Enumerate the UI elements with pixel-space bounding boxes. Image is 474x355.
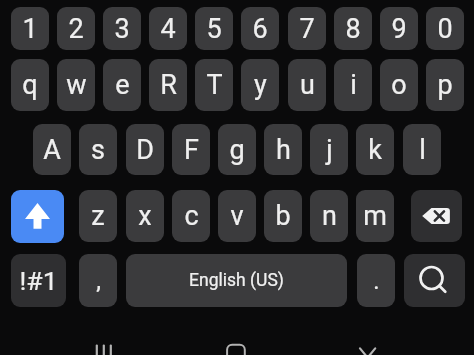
button[interactable]: 3 [103,7,141,50]
button[interactable]: n [310,190,348,242]
button[interactable] [11,190,64,243]
button[interactable]: D [126,124,164,175]
button[interactable]: s [79,124,117,175]
staticText: T [206,69,223,101]
button[interactable]: z [79,190,117,242]
staticText: 2 [68,13,84,45]
staticText: v [230,200,244,232]
staticText: c [184,200,199,232]
button[interactable]: o [380,59,418,111]
button[interactable]: m [356,190,394,242]
button[interactable]: i [334,59,372,111]
staticText: w [66,69,87,101]
button[interactable]: u [288,59,326,111]
staticText: q [22,69,38,101]
staticText: i [350,69,357,101]
staticText: e [115,69,130,101]
staticText: . [373,267,380,295]
button[interactable]: p [426,59,464,111]
button[interactable]: 8 [334,7,372,50]
staticText: 1 [22,13,38,45]
staticText: 4 [160,13,176,45]
button[interactable]: , [79,254,117,307]
staticText: o [391,69,407,101]
staticText: 5 [206,13,222,45]
staticText: z [91,200,105,232]
staticText: R [160,69,177,101]
button[interactable] [218,335,254,355]
staticText: s [91,134,105,166]
button[interactable]: F [172,124,210,175]
button[interactable]: 2 [57,7,95,50]
button[interactable]: 1 [11,7,49,50]
button[interactable]: b [264,190,302,242]
staticText: 9 [391,13,407,45]
button[interactable]: w [57,59,95,111]
staticText: g [229,134,245,166]
staticText: D [136,134,154,166]
staticText: 0 [437,13,453,45]
button[interactable]: 9 [380,7,418,50]
staticText: m [363,200,387,232]
staticText: F [184,134,199,166]
button[interactable]: R [149,59,187,111]
button[interactable]: 5 [195,7,233,50]
staticText: h [276,134,291,166]
staticText: x [138,200,152,232]
button[interactable]: 7 [288,7,326,50]
staticText: b [275,200,291,232]
button[interactable]: 4 [149,7,187,50]
button[interactable]: j [310,124,348,175]
button[interactable]: A [33,124,71,175]
button[interactable] [411,190,462,242]
staticText: l [419,134,426,166]
staticText: 7 [299,13,315,45]
button[interactable]: v [218,190,256,242]
staticText: u [300,69,315,101]
button[interactable]: !#1 [11,254,66,307]
button[interactable]: e [103,59,141,111]
staticText: k [368,134,382,166]
staticText: 3 [114,13,130,45]
button[interactable]: l [403,124,441,175]
button[interactable]: 6 [241,7,279,50]
button[interactable]: 0 [426,7,464,50]
button[interactable]: g [218,124,256,175]
staticText: y [254,69,267,101]
button[interactable]: English (US) [126,254,347,307]
button[interactable]: x [126,190,164,242]
staticText: j [326,134,333,166]
staticText: p [437,69,453,101]
staticText: A [43,134,61,166]
button[interactable] [86,335,122,355]
staticText: !#1 [19,265,58,296]
button[interactable]: h [264,124,302,175]
button[interactable]: q [11,59,49,111]
staticText: n [322,200,337,232]
staticText: 8 [345,13,361,45]
button[interactable]: T [195,59,233,111]
staticText: 6 [252,13,268,45]
button[interactable]: . [357,254,395,307]
button[interactable]: c [172,190,210,242]
button[interactable] [350,335,386,355]
button[interactable]: y [241,59,279,111]
button[interactable] [404,254,465,307]
button[interactable]: k [356,124,394,175]
staticText: , [96,267,101,295]
staticText: English (US) [189,270,284,291]
